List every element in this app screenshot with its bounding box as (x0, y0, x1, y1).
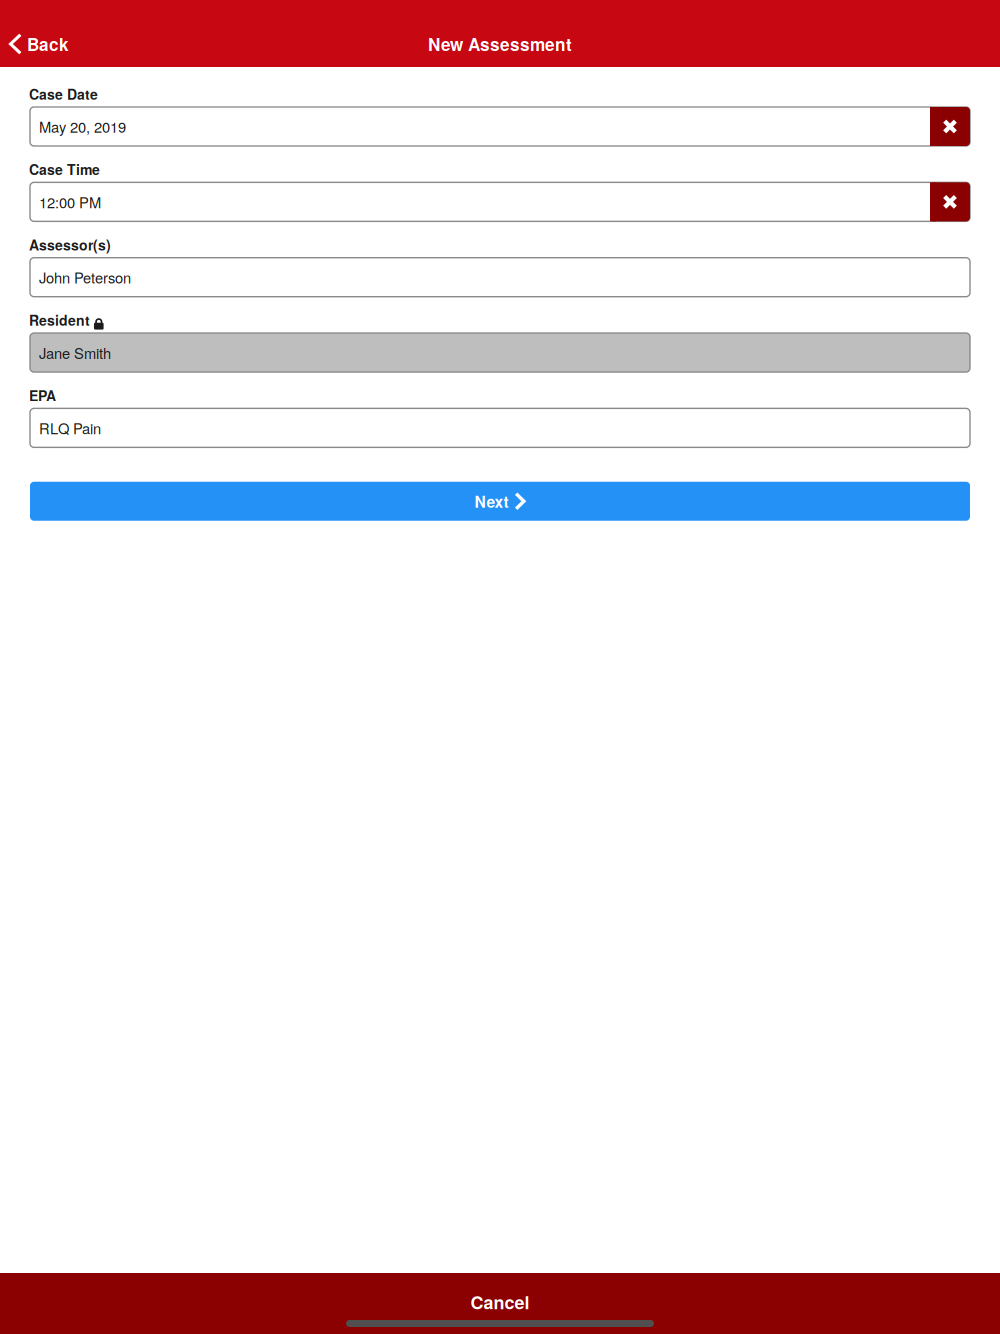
staticText: Cancel (470, 1289, 529, 1315)
button[interactable]: Clear (930, 182, 970, 221)
button[interactable]: Back (0, 22, 81, 66)
staticText: Resident (29, 310, 90, 330)
staticText: Back (27, 32, 69, 56)
staticText: Jane Smith (39, 342, 111, 363)
staticText: May 20, 2019 (39, 116, 126, 137)
button[interactable]: Clear (930, 107, 970, 146)
staticText: John Peterson (39, 267, 131, 288)
staticText: Assessor(s) (29, 235, 111, 255)
staticText: EPA (29, 385, 56, 405)
staticText: RLQ Pain (39, 417, 101, 438)
staticText: Next (474, 490, 508, 512)
button[interactable]: Next (30, 482, 970, 521)
staticText: 12:00 PM (39, 191, 101, 212)
staticText: New Assessment (428, 32, 572, 56)
staticText: Case Date (29, 84, 98, 104)
button[interactable]: Cancel (0, 1273, 1000, 1334)
staticText: Case Time (29, 159, 100, 179)
